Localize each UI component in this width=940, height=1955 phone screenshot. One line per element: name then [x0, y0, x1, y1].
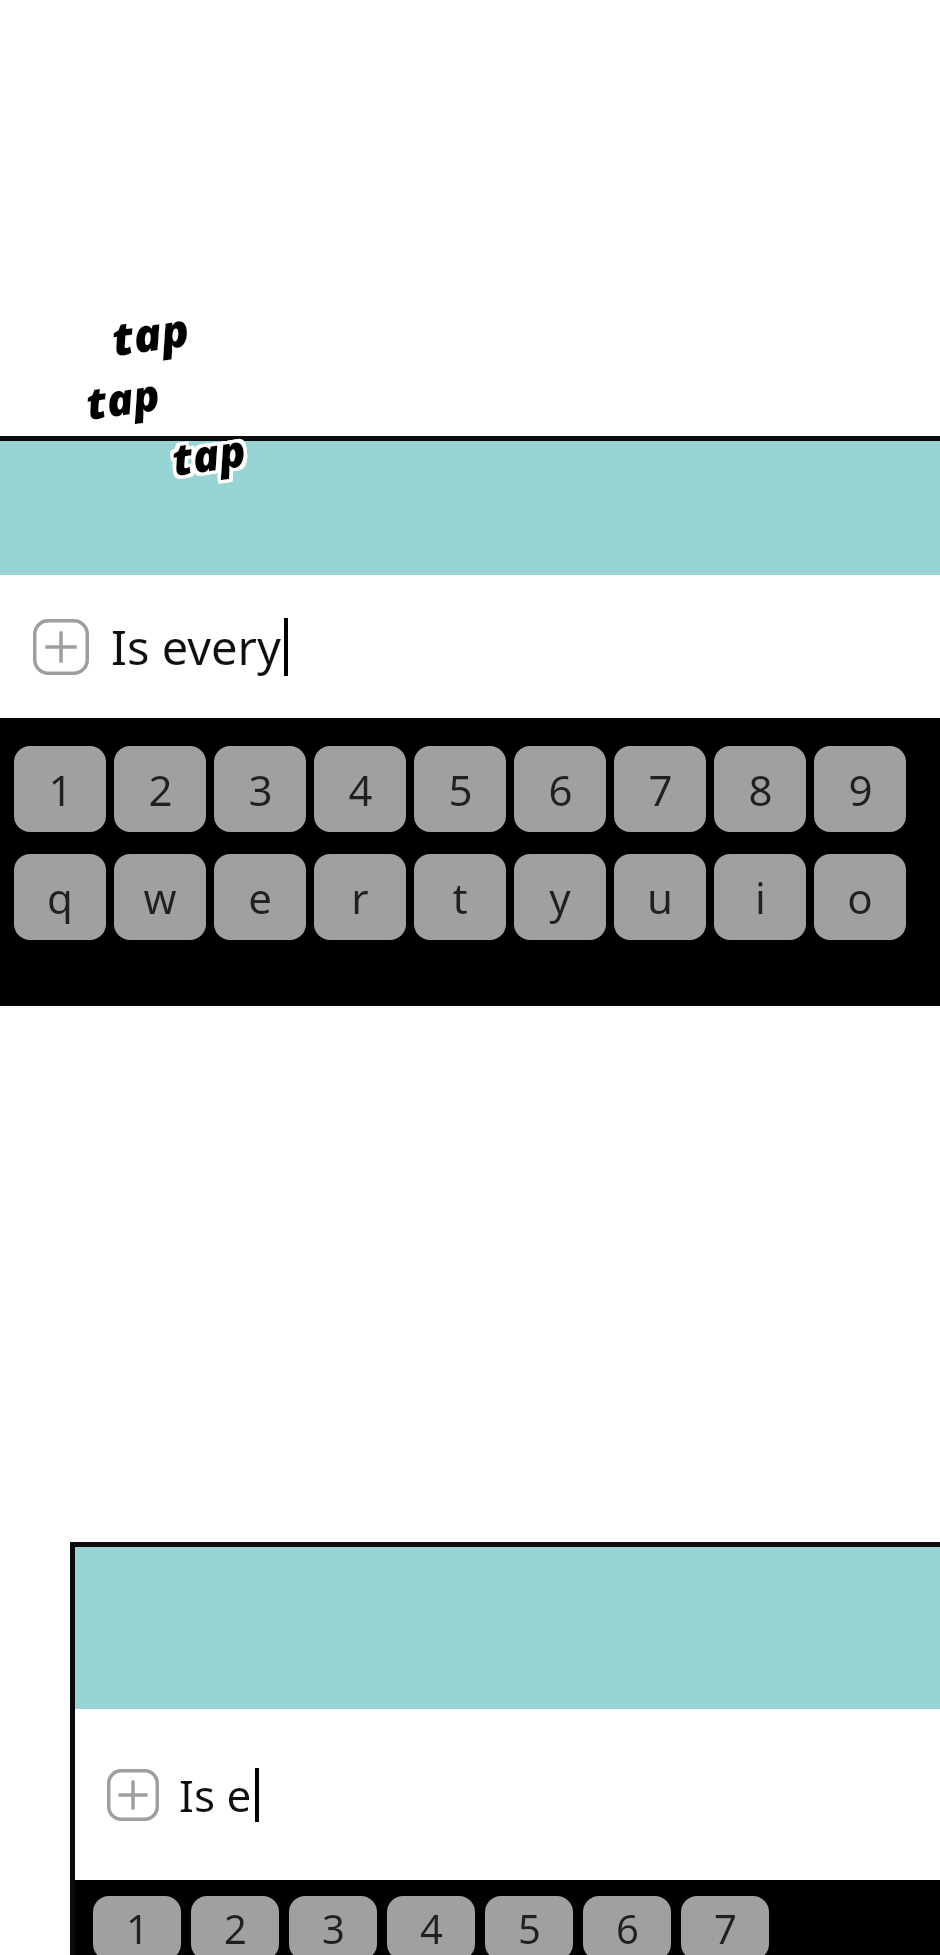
staticText: Is every	[111, 615, 281, 679]
staticText: 8	[748, 761, 773, 818]
staticText: 1	[48, 761, 73, 818]
button[interactable]: 8	[714, 746, 806, 832]
staticText: tap	[108, 297, 193, 370]
staticText: o	[847, 869, 873, 926]
staticText: 4	[420, 1901, 443, 1955]
staticText: tap	[168, 416, 249, 486]
staticText: tap	[168, 419, 250, 489]
button[interactable]: 4	[387, 1896, 475, 1955]
staticText: tap	[108, 300, 193, 373]
staticText: q	[47, 869, 73, 926]
staticText: Is e	[179, 1765, 252, 1825]
staticText: i	[755, 869, 766, 926]
staticText: tap	[110, 294, 195, 367]
staticText: 6	[616, 1901, 639, 1955]
staticText: w	[143, 869, 177, 926]
staticText: 9	[848, 761, 873, 818]
staticText: 4	[348, 761, 373, 818]
button[interactable]: 4	[314, 746, 406, 832]
staticText: u	[647, 869, 673, 926]
button[interactable]: 1	[14, 746, 106, 832]
staticText: tap	[79, 364, 161, 433]
staticText: tap	[169, 422, 250, 492]
button[interactable]: 5	[414, 746, 506, 832]
staticText: tap	[82, 360, 163, 430]
button[interactable]: y	[514, 854, 606, 940]
staticText: tap	[111, 296, 196, 370]
staticText: tap	[79, 361, 160, 430]
button[interactable]: 7	[681, 1896, 769, 1955]
staticText: tap	[105, 297, 190, 370]
staticText: 1	[126, 1901, 149, 1955]
staticText: tap	[85, 363, 167, 432]
staticText: 5	[448, 761, 473, 818]
staticText: tap	[83, 366, 164, 436]
staticText: 7	[648, 761, 673, 818]
button[interactable]: 2	[114, 746, 206, 832]
button[interactable]	[0, 441, 940, 575]
button[interactable]: 5	[485, 1896, 573, 1955]
button[interactable]: u	[614, 854, 706, 940]
button[interactable]: Add	[0, 575, 940, 718]
button[interactable]: 3	[214, 746, 306, 832]
staticText: tap	[166, 422, 247, 492]
staticText: y	[549, 869, 571, 926]
staticText: 3	[322, 1901, 345, 1955]
button[interactable]: r	[314, 854, 406, 940]
staticText: tap	[111, 299, 196, 373]
staticText: 2	[148, 761, 173, 818]
button[interactable]: 6	[583, 1896, 671, 1955]
button[interactable]: 1	[93, 1896, 181, 1955]
button[interactable]: q	[14, 854, 106, 940]
staticText: e	[248, 869, 272, 926]
staticText: 3	[248, 761, 273, 818]
button[interactable]: o	[814, 854, 906, 940]
staticText: tap	[108, 294, 193, 367]
staticText: tap	[171, 419, 253, 488]
button[interactable]: 3	[289, 1896, 377, 1955]
staticText: t	[452, 869, 468, 926]
button[interactable]: 6	[514, 746, 606, 832]
button[interactable]: e	[214, 854, 306, 940]
button[interactable]: Add	[107, 1769, 159, 1821]
staticText: tap	[86, 366, 167, 435]
button[interactable]: 9	[814, 746, 906, 832]
staticText: 7	[714, 1901, 737, 1955]
staticText: 6	[548, 761, 573, 818]
staticText: tap	[105, 294, 190, 367]
button[interactable]: 7	[614, 746, 706, 832]
staticText: tap	[165, 417, 246, 486]
staticText: tap	[105, 300, 190, 373]
button[interactable]: Add	[75, 1709, 940, 1880]
staticText: r	[351, 869, 369, 926]
button[interactable]: w	[114, 854, 206, 940]
staticText: tap	[82, 363, 164, 433]
staticText: tap	[171, 416, 252, 485]
staticText: 2	[224, 1901, 247, 1955]
staticText: tap	[165, 420, 247, 489]
button[interactable]: t	[414, 854, 506, 940]
button[interactable]: i	[714, 854, 806, 940]
staticText: 5	[518, 1901, 541, 1955]
staticText: tap	[85, 360, 166, 429]
button[interactable]: Add	[33, 619, 89, 675]
staticText: tap	[80, 366, 161, 436]
button[interactable]: 2	[191, 1896, 279, 1955]
staticText: tap	[172, 422, 253, 491]
